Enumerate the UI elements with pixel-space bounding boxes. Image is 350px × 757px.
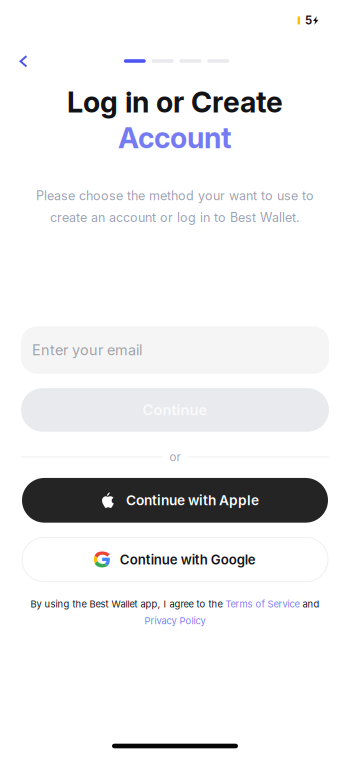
staticText: By using the Best Wallet app, I agree to… [30, 598, 225, 610]
staticText: Account [118, 120, 232, 155]
staticText: 5 [305, 14, 312, 27]
staticText: Continue [142, 401, 207, 419]
staticText: and [299, 598, 319, 610]
button[interactable]: Continue with Google [22, 537, 328, 582]
staticText: Please choose the method your want to us… [36, 188, 314, 203]
button[interactable]: Continue [21, 388, 329, 432]
staticText: create an account or log in to Best Wall… [50, 210, 300, 225]
button[interactable]: Continue with Apple [22, 478, 328, 523]
staticText: Privacy Policy [144, 615, 205, 627]
staticText: Continue with Apple [126, 492, 259, 508]
staticText: or [169, 450, 180, 464]
button[interactable]: Terms of Service [225, 598, 299, 610]
staticText: Enter your email [32, 341, 142, 359]
button[interactable]: Enter your email [21, 326, 329, 374]
button[interactable]: Privacy Policy [144, 615, 205, 627]
staticText: Log in or Create [67, 85, 283, 119]
staticText: Continue with Google [120, 552, 256, 568]
staticText: Terms of Service [225, 598, 299, 610]
button[interactable]: Back [6, 44, 40, 78]
